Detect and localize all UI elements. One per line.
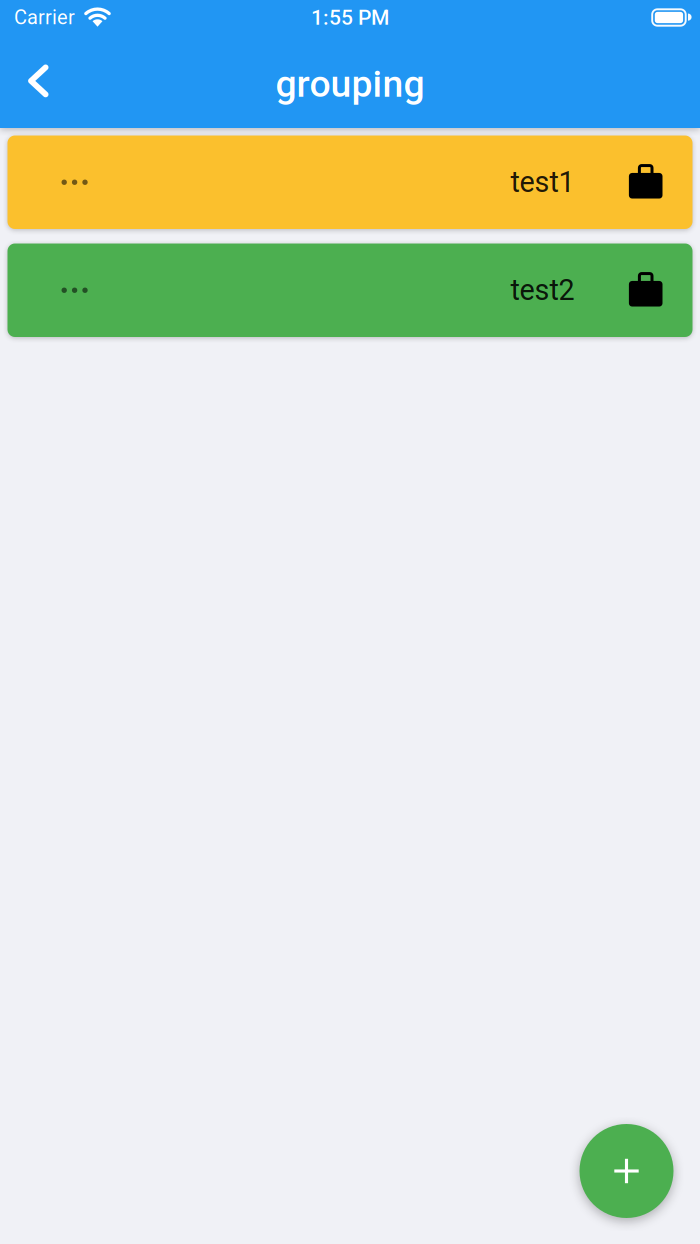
staticText: test2 — [510, 273, 574, 307]
button[interactable]: Add — [579, 1124, 673, 1218]
staticText: Carrier — [14, 6, 75, 29]
button[interactable]: Back — [0, 47, 49, 120]
staticText: grouping — [275, 62, 424, 106]
button[interactable]: test2 — [7, 243, 692, 337]
staticText: test1 — [510, 165, 574, 199]
button[interactable]: test1 — [7, 135, 692, 229]
staticText: 1:55 PM — [311, 5, 389, 30]
